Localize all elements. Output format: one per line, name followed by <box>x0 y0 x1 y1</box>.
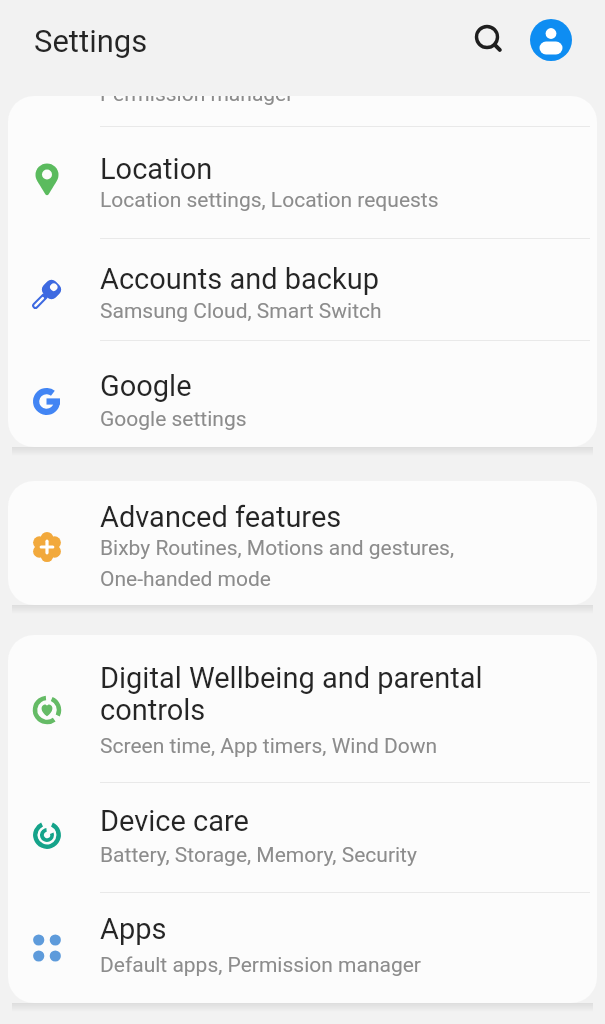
staticText: Accounts and backup <box>100 262 380 296</box>
staticText: Samsung Cloud, Smart Switch <box>100 299 382 324</box>
button[interactable]: Digital Wellbeing and parental controls <box>8 635 597 782</box>
button[interactable]: Accounts and backup <box>8 238 597 340</box>
staticText: Device care <box>100 804 249 838</box>
staticText: Location <box>100 152 213 186</box>
staticText: Advanced features <box>100 500 342 534</box>
staticText: Battery, Storage, Memory, Security <box>100 843 417 868</box>
button[interactable]: Google <box>8 340 597 447</box>
staticText: Location settings, Location requests <box>100 188 439 213</box>
button[interactable]: Location <box>8 126 597 238</box>
staticText: Permission manager <box>100 96 294 107</box>
button[interactable]: Device care <box>8 782 597 892</box>
staticText: Screen time, App timers, Wind Down <box>100 734 438 759</box>
staticText: Bixby Routines, Motions and gestures, On… <box>100 536 455 591</box>
staticText: Apps <box>100 912 167 946</box>
button[interactable] <box>530 19 572 61</box>
staticText: Default apps, Permission manager <box>100 953 421 978</box>
staticText: Settings <box>34 23 148 59</box>
staticText: Google <box>100 369 192 403</box>
staticText: Google settings <box>100 407 247 432</box>
button[interactable]: Advanced features <box>8 481 597 605</box>
staticText: Digital Wellbeing and parental controls <box>100 661 483 727</box>
button[interactable]: Apps <box>8 892 597 1003</box>
button[interactable] <box>465 15 509 59</box>
